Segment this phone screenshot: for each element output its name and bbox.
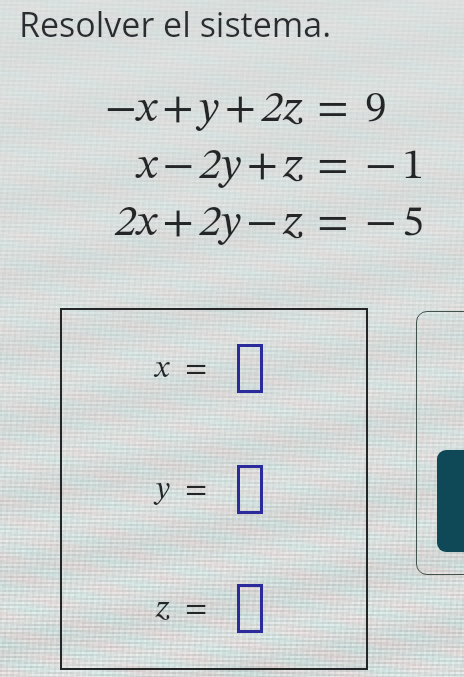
button[interactable]: Keypad key <box>437 450 464 552</box>
staticText: = <box>185 474 208 505</box>
staticText: − 1 <box>365 144 424 188</box>
staticText: x − 2y + z <box>137 144 303 188</box>
staticText: = <box>317 201 349 245</box>
staticText: − 5 <box>365 201 424 245</box>
staticText: = <box>317 144 349 188</box>
staticText: = <box>185 353 208 384</box>
button[interactable]: Answer card <box>60 308 368 670</box>
staticText: 2x + 2y − z <box>115 201 303 245</box>
staticText: Resolver el sistema. <box>19 1 332 47</box>
staticText: = <box>185 593 208 624</box>
staticText: = <box>317 87 349 131</box>
staticText: −x + y + 2z <box>105 87 303 131</box>
button[interactable]: Answer field for y <box>237 465 263 514</box>
staticText: y <box>156 474 170 505</box>
staticText: 9 <box>365 87 387 131</box>
button[interactable]: Answer field for z <box>237 584 263 633</box>
button[interactable]: Answer field for x <box>237 344 263 393</box>
staticText: x <box>155 353 170 384</box>
staticText: z <box>156 593 170 624</box>
